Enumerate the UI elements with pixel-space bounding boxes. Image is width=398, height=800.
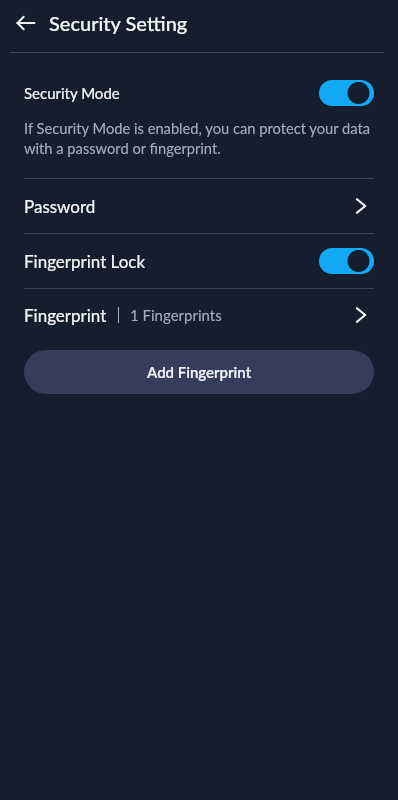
button[interactable]: Security Mode toggle (319, 80, 374, 106)
button[interactable]: Fingerprint Lock (0, 234, 398, 288)
staticText: Security Mode (24, 84, 120, 102)
staticText: Fingerprint (24, 305, 107, 325)
staticText: 1 Fingerprints (130, 306, 222, 324)
button[interactable]: Add Fingerprint (24, 350, 374, 394)
button[interactable]: Security Mode (0, 53, 398, 119)
staticText: Add Fingerprint (147, 363, 252, 381)
staticText: Security Setting (49, 11, 188, 35)
staticText: If Security Mode is enabled, you can pro… (24, 119, 378, 157)
button[interactable]: Fingerprint lock toggle (319, 248, 374, 274)
button[interactable]: Open fingerprints (348, 302, 374, 328)
button[interactable]: Back (8, 5, 44, 41)
staticText: Password (24, 196, 96, 216)
button[interactable]: Password (0, 179, 398, 233)
staticText: Fingerprint Lock (24, 251, 146, 271)
button[interactable]: Fingerprint (0, 289, 398, 341)
button[interactable]: Open password settings (348, 193, 374, 219)
